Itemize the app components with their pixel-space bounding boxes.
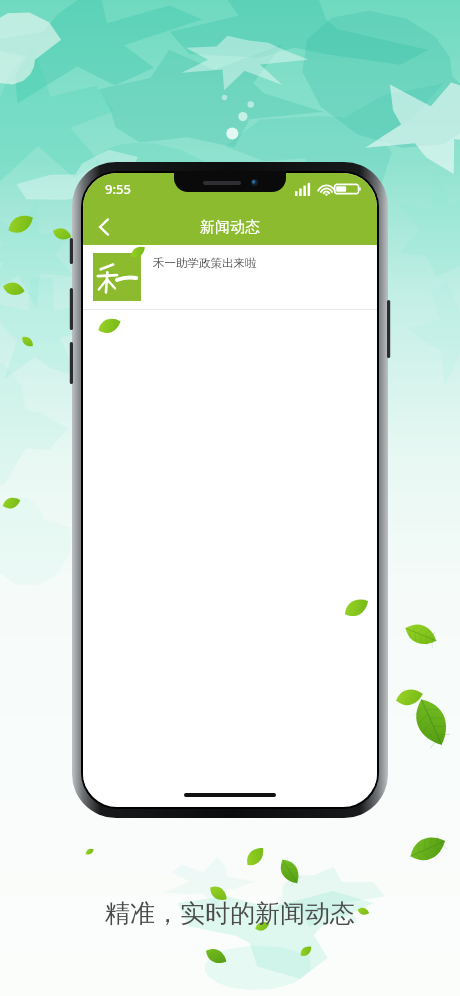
button[interactable]: Back (83, 209, 125, 245)
staticText: 禾一助学政策出来啦 (153, 256, 257, 270)
staticText: 精准，实时的新闻动态 (0, 898, 460, 929)
staticText: 9:55 (105, 180, 131, 198)
button[interactable]: 禾一助学政策出来啦 (83, 245, 377, 310)
staticText: 新闻动态 (200, 218, 260, 237)
